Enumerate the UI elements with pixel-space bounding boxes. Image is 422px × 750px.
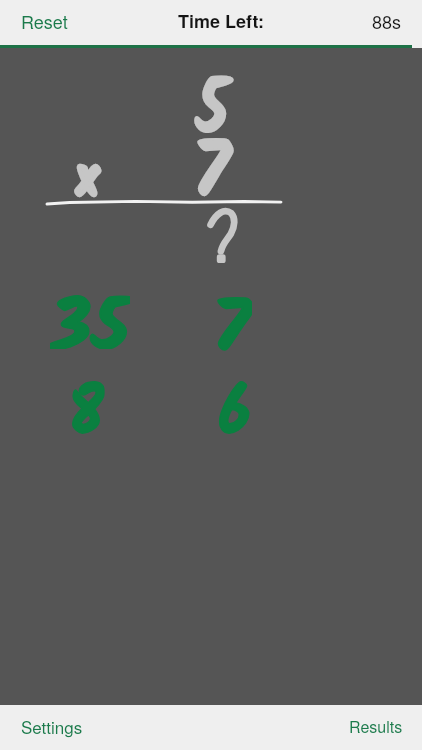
staticText: 7 <box>192 115 230 236</box>
staticText: 7 <box>192 115 230 236</box>
button[interactable]: 35 <box>30 286 160 362</box>
staticText: 7 <box>211 277 252 353</box>
staticText: 88s <box>372 8 402 34</box>
button[interactable]: Reset <box>0 0 88 45</box>
button[interactable]: 8 <box>30 370 160 446</box>
staticText: Reset <box>21 8 68 34</box>
staticText: 8 <box>68 361 105 437</box>
staticText: Settings <box>21 714 83 738</box>
staticText: 5 <box>196 52 229 173</box>
button[interactable]: 7 <box>190 286 300 362</box>
button[interactable]: Results <box>330 705 422 750</box>
staticText: 7 <box>211 277 252 353</box>
staticText: Results <box>349 715 403 738</box>
staticText: x <box>76 136 99 225</box>
staticText: x <box>76 136 99 225</box>
staticText: 35 <box>50 273 130 349</box>
staticText: 6 <box>219 361 251 437</box>
button[interactable]: Settings <box>0 705 100 750</box>
button[interactable]: 6 <box>190 370 300 446</box>
staticText: 8 <box>68 361 105 437</box>
staticText: 5 <box>196 52 229 173</box>
staticText: Time Left: <box>178 8 264 34</box>
staticText: 35 <box>50 273 130 349</box>
staticText: 6 <box>219 361 251 437</box>
